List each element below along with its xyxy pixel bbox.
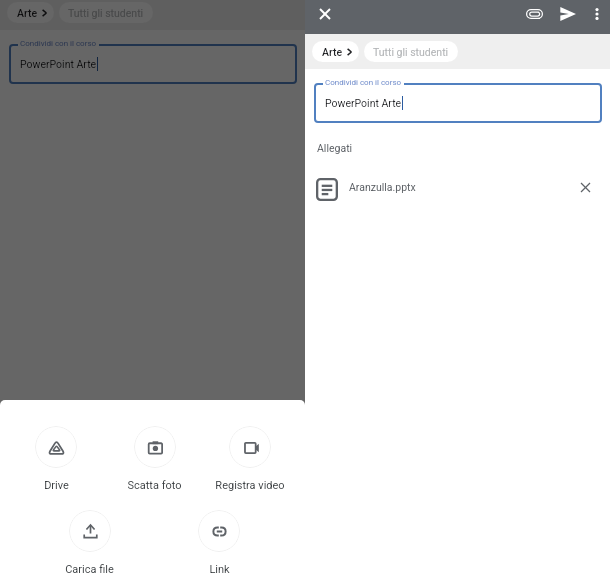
staticText: Arte — [17, 7, 38, 19]
staticText: Aranzulla.pptx — [349, 181, 416, 193]
staticText: Condividi con il corso — [20, 39, 97, 48]
staticText: Arte — [322, 46, 343, 58]
button[interactable]: More options — [584, 1, 610, 27]
button[interactable]: Attach file — [521, 1, 547, 27]
staticText: Scatta foto — [127, 479, 182, 492]
staticText: Tutti gli studenti — [68, 7, 144, 19]
button[interactable]: Tutti gli studenti — [59, 2, 153, 23]
button[interactable]: Drive — [8, 426, 104, 492]
button[interactable]: Send — [555, 1, 581, 27]
button[interactable]: Aranzulla.pptx — [305, 172, 610, 202]
staticText: Link — [209, 563, 230, 576]
button[interactable]: PowerPoint Arte — [9, 44, 297, 84]
staticText: PowerPoint Arte — [20, 58, 97, 70]
button[interactable]: Link — [171, 510, 267, 576]
button[interactable]: Arte — [7, 2, 54, 23]
button[interactable]: Tutti gli studenti — [364, 41, 458, 62]
button[interactable]: Carica file — [41, 510, 137, 576]
button[interactable]: Registra video — [202, 426, 298, 492]
staticText: Registra video — [215, 479, 285, 492]
staticText: Drive — [44, 479, 69, 492]
button[interactable]: PowerPoint Arte — [314, 83, 602, 123]
button[interactable]: Scatta foto — [106, 426, 202, 492]
button[interactable]: Remove attachment — [573, 175, 597, 199]
button[interactable]: Arte — [312, 41, 359, 62]
button[interactable]: Close — [312, 1, 338, 27]
staticText: Tutti gli studenti — [373, 46, 449, 58]
staticText: Carica file — [65, 563, 114, 576]
staticText: Condividi con il corso — [325, 78, 402, 87]
staticText: Allegati — [317, 142, 353, 154]
staticText: PowerPoint Arte — [325, 97, 402, 109]
